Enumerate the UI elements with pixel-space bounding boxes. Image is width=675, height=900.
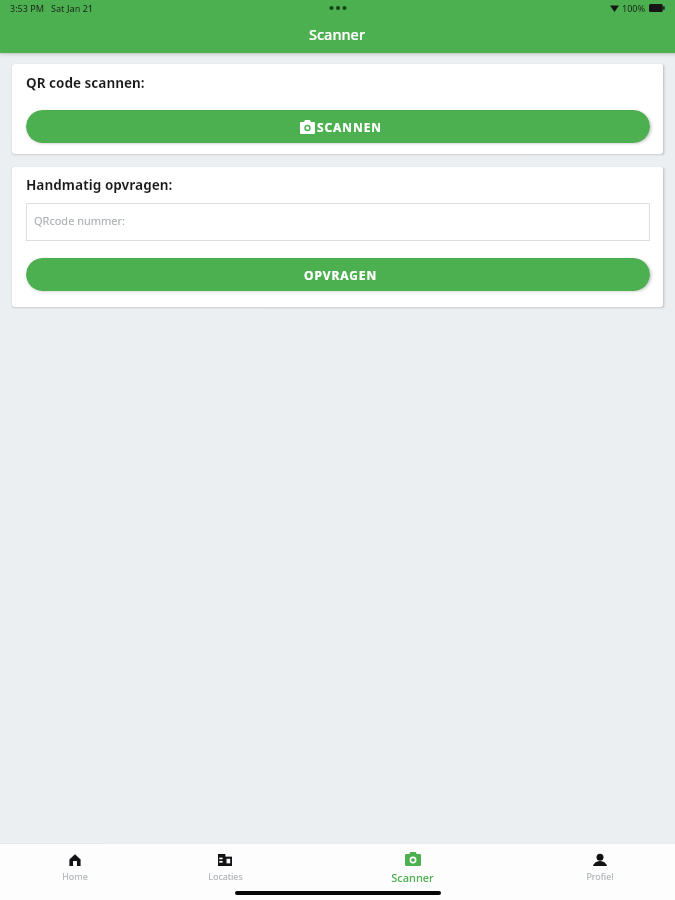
staticText: Scanner (309, 24, 366, 44)
staticText: Locaties (208, 870, 243, 882)
staticText: 3:53 PM Sat Jan 21 (10, 2, 93, 14)
staticText: OPVRAGEN (304, 267, 378, 283)
staticText: 100% (622, 2, 646, 14)
button[interactable]: Locaties (150, 848, 300, 882)
button[interactable]: Profiel (525, 848, 675, 882)
button[interactable]: SCANNEN (26, 110, 650, 143)
staticText: Profiel (586, 870, 614, 882)
button[interactable]: Home (0, 848, 150, 882)
button[interactable]: OPVRAGEN (26, 258, 650, 291)
staticText: Home (62, 870, 88, 882)
staticText: QRcode nummer: (34, 213, 126, 228)
staticText: QR code scannen: (26, 74, 145, 92)
button[interactable]: QRcode nummer invoerveld (26, 203, 650, 241)
staticText: Scanner (391, 870, 434, 885)
button[interactable]: Scanner (300, 846, 525, 885)
staticText: Handmatig opvragen: (26, 176, 173, 194)
staticText: SCANNEN (317, 119, 382, 135)
